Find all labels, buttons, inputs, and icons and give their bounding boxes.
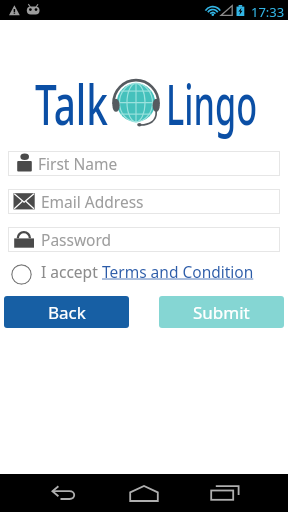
button[interactable]: Password [8,227,280,252]
button[interactable]: Accept terms checkbox [11,264,32,285]
staticText: Talk [35,64,108,142]
button[interactable]: Home [120,474,168,512]
staticText: Submit [193,301,250,324]
staticText: Lingo [166,64,257,142]
button[interactable]: Email Address [8,189,280,214]
staticText: Password [41,229,112,250]
button[interactable]: First Name [8,151,280,176]
button[interactable]: Back [40,474,88,512]
staticText: Email Address [41,191,144,212]
staticText: 17:33 [251,3,285,21]
button[interactable]: Back [4,296,129,328]
staticText: Terms and Condition [102,261,254,282]
staticText: Back [48,301,86,324]
button[interactable]: Terms and Condition [102,261,254,282]
staticText: I accept [41,261,102,282]
staticText: First Name [38,153,118,174]
button[interactable]: Submit [159,296,284,328]
button[interactable]: Recent apps [201,474,249,512]
